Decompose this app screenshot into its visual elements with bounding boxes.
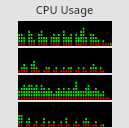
button[interactable]: CPU core usage graph <box>18 48 112 73</box>
button[interactable]: CPU core usage graph <box>18 21 112 46</box>
button[interactable]: CPU core usage graph <box>18 102 112 127</box>
button[interactable]: CPU Usage <box>0 2 129 17</box>
button[interactable]: CPU core usage graph <box>18 75 112 100</box>
